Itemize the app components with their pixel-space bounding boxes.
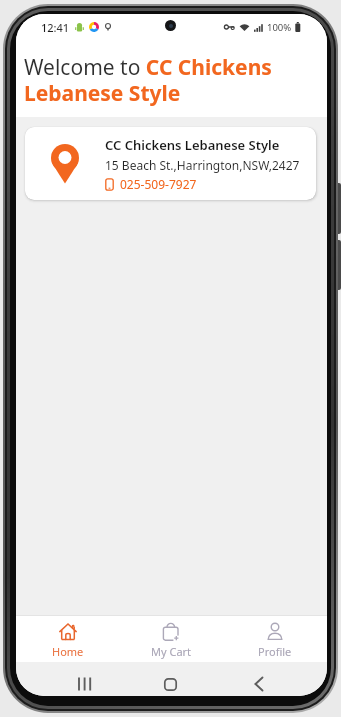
staticText: Welcome to CC Chickens Lebanese Style xyxy=(24,53,272,108)
staticText: Profile xyxy=(258,644,292,659)
staticText: Home xyxy=(52,644,84,659)
button[interactable]: Profile xyxy=(223,616,327,662)
button[interactable] xyxy=(71,670,99,696)
staticText: CC Chickens Lebanese Style xyxy=(105,136,280,154)
button[interactable] xyxy=(156,670,184,696)
button[interactable] xyxy=(245,670,273,696)
staticText: 15 Beach St.,Harrington,NSW,2427 xyxy=(105,157,300,173)
button[interactable]: CC Chickens Lebanese Style xyxy=(25,127,316,200)
staticText: My Cart xyxy=(151,644,192,659)
button[interactable]: Home xyxy=(16,616,119,662)
staticText: 100% xyxy=(267,21,292,34)
staticText: 025-509-7927 xyxy=(120,176,197,192)
button[interactable]: My Cart xyxy=(119,616,223,662)
staticText: 12:41 xyxy=(41,20,70,35)
button[interactable]: 025-509-7927 xyxy=(105,176,197,192)
